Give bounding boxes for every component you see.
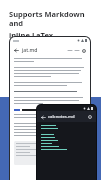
staticText: inline LaTex. <box>9 30 56 40</box>
button[interactable]: Back <box>40 114 46 120</box>
button[interactable]: More options <box>87 114 93 120</box>
button[interactable]: Undo <box>66 47 73 54</box>
button[interactable]: More options <box>80 47 87 54</box>
staticText: Supports Markdown and <box>9 9 96 28</box>
button[interactable]: jat.md <box>22 47 38 54</box>
button[interactable]: Redo <box>73 47 80 54</box>
button[interactable]: Back <box>13 47 20 54</box>
button[interactable]: calcnotes.md <box>48 114 75 120</box>
